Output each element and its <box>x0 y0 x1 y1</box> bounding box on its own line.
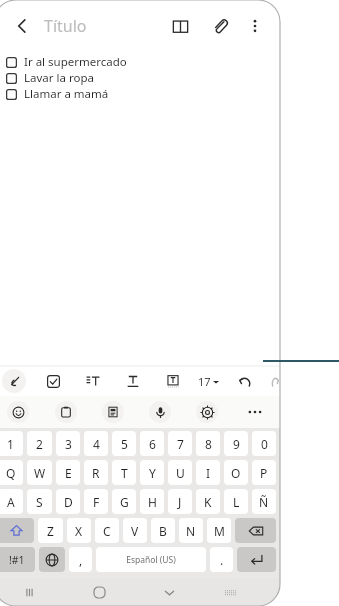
button[interactable]: Y <box>140 460 164 485</box>
button[interactable]: 1 <box>0 431 23 456</box>
button[interactable]: Ir al supermercado <box>6 54 280 70</box>
button[interactable]: 0 <box>252 431 276 456</box>
button[interactable]: X <box>67 518 91 543</box>
button[interactable]: K <box>196 489 220 514</box>
staticText: 17 <box>198 374 211 389</box>
staticText: U <box>176 465 185 481</box>
button[interactable]: T <box>112 460 136 485</box>
staticText: Ñ <box>259 494 269 510</box>
button[interactable]: More options <box>240 11 270 41</box>
button[interactable]: 7 <box>168 431 192 456</box>
button[interactable]: Keyboard layout <box>204 578 257 606</box>
button[interactable]: !#1 <box>0 547 35 572</box>
staticText: H <box>148 494 157 510</box>
staticText: , <box>79 552 83 568</box>
button[interactable]: H <box>140 489 164 514</box>
staticText: Español (US) <box>126 554 176 566</box>
button[interactable]: O <box>224 460 248 485</box>
button[interactable]: Redo <box>271 370 280 392</box>
staticText: 0 <box>261 436 268 452</box>
staticText: X <box>75 523 83 539</box>
button[interactable]: Lavar la ropa <box>6 70 280 86</box>
button[interactable]: E <box>56 460 80 485</box>
button[interactable]: F <box>84 489 108 514</box>
button[interactable]: Shift <box>0 518 34 543</box>
button[interactable]: . <box>210 547 233 572</box>
button[interactable]: N <box>179 518 203 543</box>
button[interactable]: Ñ <box>252 489 276 514</box>
button[interactable]: P <box>252 460 276 485</box>
button[interactable]: Back <box>6 10 38 42</box>
button[interactable]: Paragraph <box>82 370 104 392</box>
button[interactable]: Recents <box>0 578 64 606</box>
button[interactable]: 8 <box>196 431 220 456</box>
staticText: 9 <box>233 436 240 452</box>
button[interactable]: M <box>207 518 231 543</box>
staticText: Lavar la ropa <box>24 70 94 86</box>
staticText: 6 <box>149 436 156 452</box>
button[interactable]: Reading mode <box>164 10 196 42</box>
button[interactable]: Home <box>64 578 134 606</box>
button[interactable]: U <box>168 460 192 485</box>
button[interactable]: Settings <box>183 396 230 428</box>
staticText: C <box>103 523 111 539</box>
button[interactable]: A <box>0 489 23 514</box>
staticText: T <box>121 465 128 481</box>
button[interactable]: W <box>27 460 52 485</box>
button[interactable]: C <box>95 518 119 543</box>
button[interactable]: G <box>112 489 136 514</box>
staticText: K <box>204 494 212 510</box>
staticText: F <box>93 494 100 510</box>
button[interactable]: Stickers <box>89 396 136 428</box>
staticText: !#1 <box>9 553 25 567</box>
button[interactable]: Enter <box>237 547 276 572</box>
staticText: 8 <box>205 436 212 452</box>
button[interactable]: B <box>151 518 175 543</box>
button[interactable]: 9 <box>224 431 248 456</box>
button[interactable]: 3 <box>56 431 80 456</box>
staticText: N <box>186 523 196 539</box>
staticText: Título <box>44 15 87 37</box>
button[interactable]: , <box>69 547 92 572</box>
button[interactable]: Llamar a mamá <box>6 86 280 102</box>
button[interactable]: Clipboard <box>42 396 89 428</box>
staticText: Q <box>6 465 16 481</box>
staticText: E <box>65 465 72 481</box>
button[interactable]: Hide keyboard <box>134 578 204 606</box>
button[interactable]: 5 <box>112 431 136 456</box>
button[interactable]: Change language <box>39 547 65 572</box>
staticText: 3 <box>65 436 72 452</box>
button[interactable]: S <box>27 489 52 514</box>
staticText: B <box>159 523 167 539</box>
button[interactable]: Z <box>38 518 63 543</box>
button[interactable]: 17 <box>196 374 221 389</box>
button[interactable]: 4 <box>84 431 108 456</box>
staticText: 2 <box>36 436 43 452</box>
button[interactable]: Undo <box>233 370 255 392</box>
staticText: G <box>120 494 129 510</box>
button[interactable]: Español (US) <box>96 547 206 572</box>
staticText: 1 <box>7 436 14 452</box>
button[interactable]: Pen <box>2 369 26 393</box>
button[interactable]: Text style <box>122 370 144 392</box>
staticText: 7 <box>177 436 184 452</box>
button[interactable]: 2 <box>27 431 52 456</box>
staticText: O <box>231 465 241 481</box>
button[interactable]: V <box>123 518 147 543</box>
button[interactable]: L <box>224 489 248 514</box>
button[interactable]: Attach <box>204 10 236 42</box>
button[interactable]: Voice input <box>136 396 183 428</box>
button[interactable]: D <box>56 489 80 514</box>
button[interactable]: 6 <box>140 431 164 456</box>
button[interactable]: More keyboard options <box>230 396 280 428</box>
staticText: A <box>7 494 15 510</box>
button[interactable]: J <box>168 489 192 514</box>
button[interactable]: R <box>84 460 108 485</box>
button[interactable]: Q <box>0 460 23 485</box>
staticText: V <box>131 523 139 539</box>
button[interactable]: Backspace <box>235 518 276 543</box>
button[interactable]: I <box>196 460 220 485</box>
button[interactable]: Text box <box>162 370 184 392</box>
button[interactable]: Checklist <box>42 370 64 392</box>
button[interactable]: Emoji <box>0 396 42 428</box>
